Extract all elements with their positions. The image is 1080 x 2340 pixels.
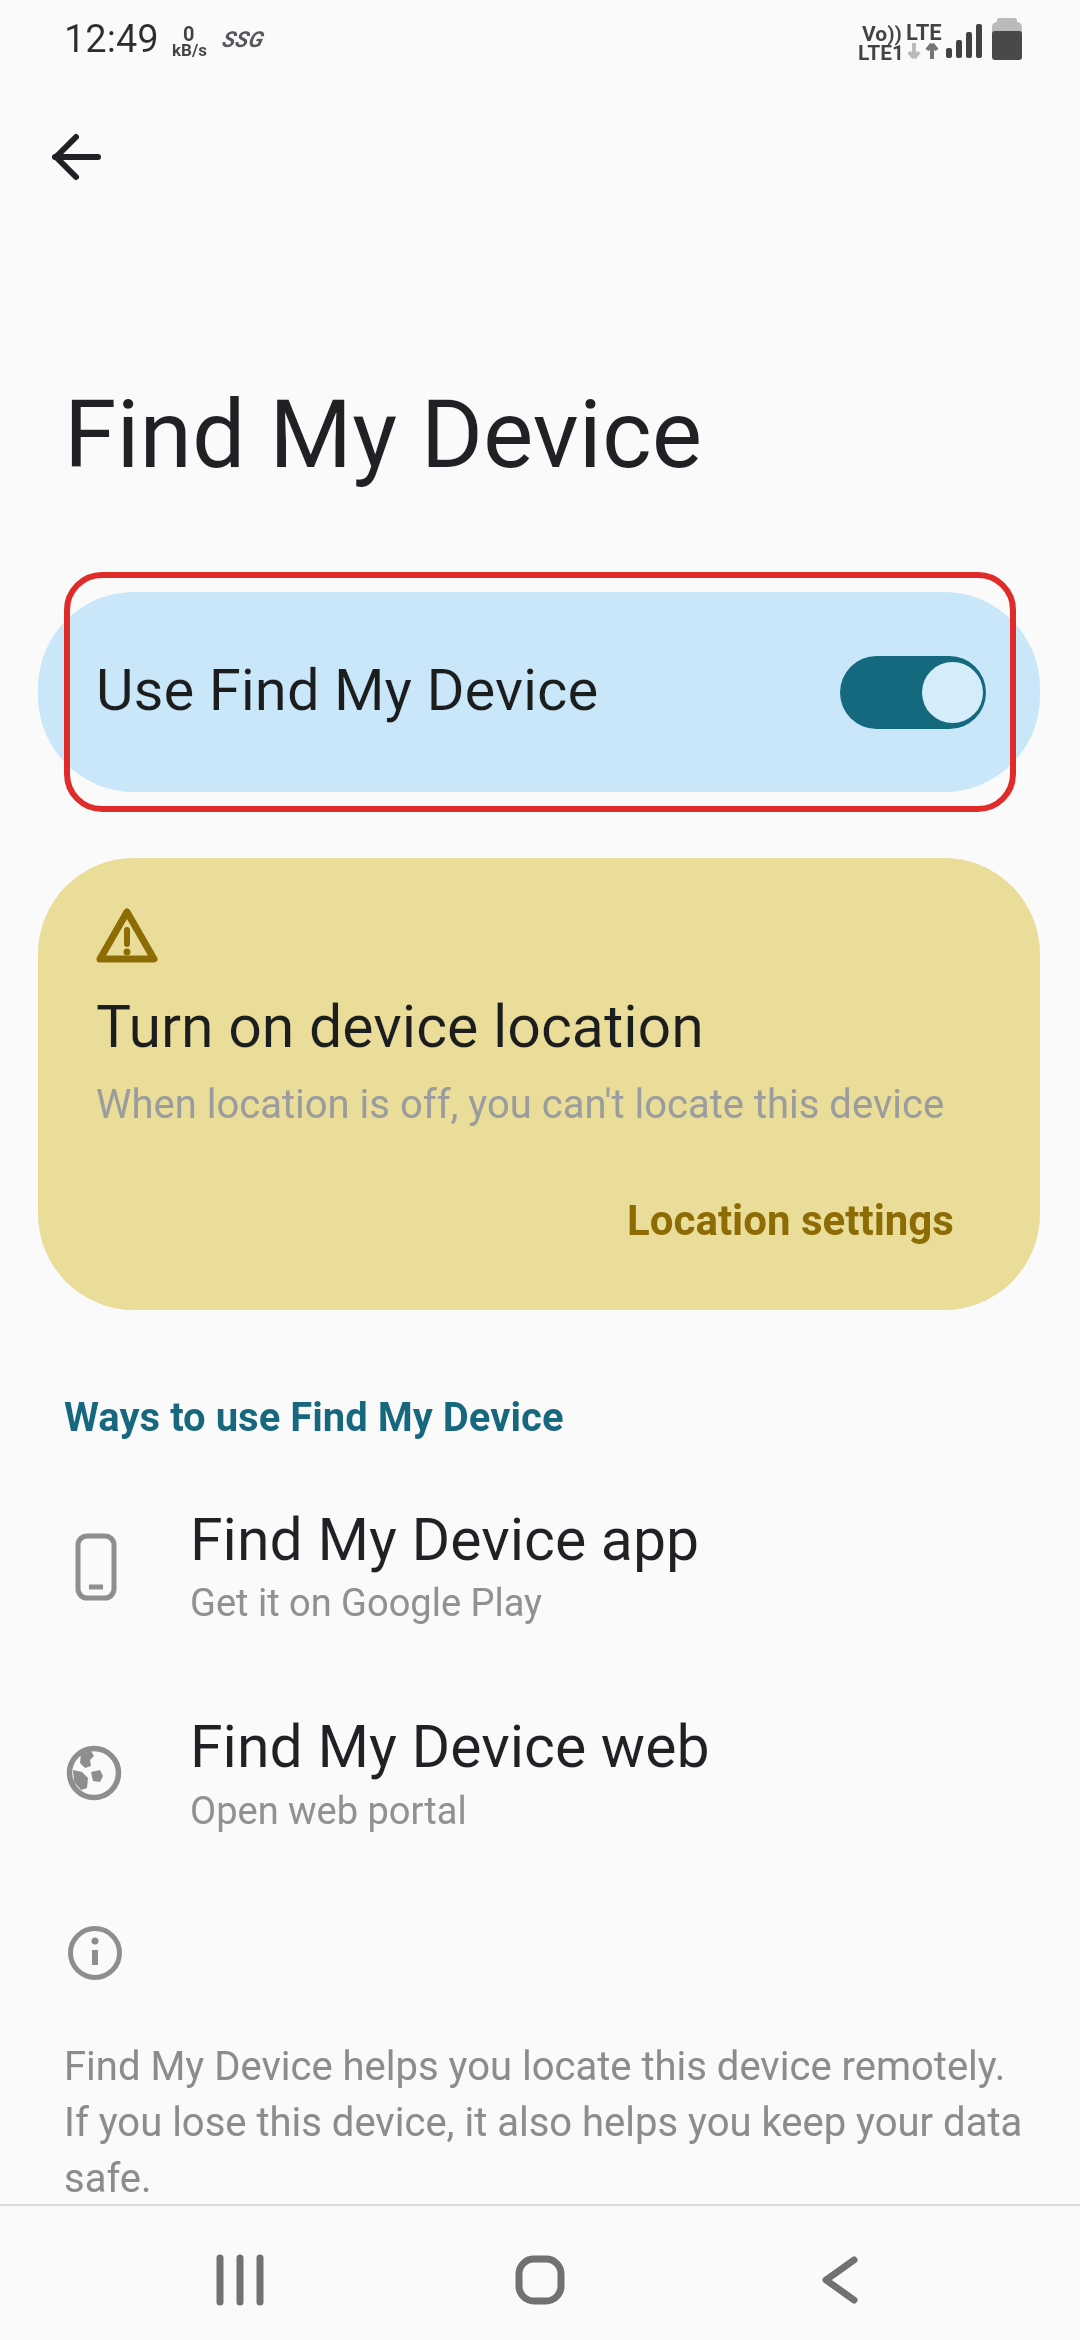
staticText: Use Find My Device — [96, 656, 599, 724]
button[interactable] — [32, 112, 122, 202]
staticText: LTE1 — [858, 41, 905, 66]
button[interactable] — [770, 2230, 910, 2330]
staticText: When location is off, you can't locate t… — [96, 1081, 945, 1128]
button[interactable]: Find My Device app — [0, 1496, 1080, 1676]
staticText: 12:49 — [64, 17, 159, 62]
staticText: Open web portal — [190, 1789, 467, 1834]
button[interactable]: Location settings — [627, 1196, 954, 1245]
staticText: Find My Device app — [190, 1505, 700, 1574]
button[interactable]: Find My Device web — [0, 1702, 1080, 1882]
button[interactable] — [170, 2230, 310, 2330]
staticText: kB/s — [172, 40, 208, 60]
staticText: SSG — [221, 27, 262, 53]
button[interactable]: Use Find My Device — [38, 592, 1040, 792]
staticText: If you lose this device, it also helps y… — [64, 2099, 1023, 2146]
staticText: 0 — [183, 22, 195, 45]
staticText: Ways to use Find My Device — [64, 1394, 564, 1441]
staticText: Find My Device web — [190, 1712, 710, 1781]
button[interactable] — [470, 2230, 610, 2330]
staticText: LTE — [906, 20, 942, 46]
staticText: Vo)) — [862, 22, 902, 47]
staticText: Turn on device location — [96, 992, 704, 1061]
staticText: safe. — [64, 2155, 152, 2202]
staticText: Find My Device helps you locate this dev… — [64, 2043, 1006, 2090]
staticText: Find My Device — [64, 379, 703, 490]
staticText: Get it on Google Play — [190, 1581, 543, 1626]
